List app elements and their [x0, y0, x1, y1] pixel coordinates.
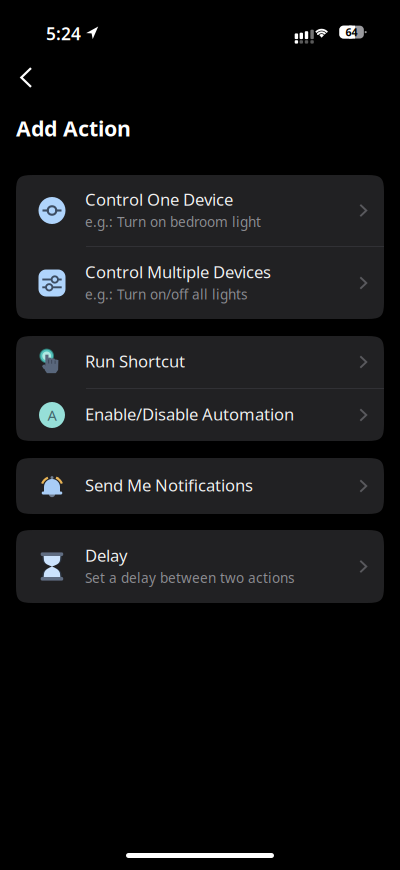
button[interactable]: Back [0, 56, 52, 99]
staticText: 5:24 [46, 22, 81, 45]
staticText: Send Me Notifications [85, 474, 253, 496]
button[interactable]: Run Shortcut [16, 336, 384, 388]
button[interactable]: Control One Device [16, 175, 384, 246]
staticText: Add Action [16, 114, 131, 142]
button[interactable]: Control Multiple Devices [16, 247, 384, 319]
staticText: Enable/Disable Automation [85, 403, 294, 425]
staticText: Run Shortcut [85, 350, 185, 372]
button[interactable]: Delay [16, 530, 384, 603]
staticText: Control One Device [85, 188, 233, 210]
staticText: Set a delay between two actions [85, 569, 295, 587]
button[interactable]: Send Me Notifications [16, 458, 384, 514]
staticText: Delay [85, 544, 128, 566]
staticText: e.g.: Turn on/off all lights [85, 285, 248, 303]
staticText: Control Multiple Devices [85, 261, 271, 283]
staticText: A [47, 405, 56, 425]
button[interactable]: A [16, 389, 384, 441]
staticText: e.g.: Turn on bedroom light [85, 213, 261, 231]
staticText: 64 [346, 25, 358, 39]
